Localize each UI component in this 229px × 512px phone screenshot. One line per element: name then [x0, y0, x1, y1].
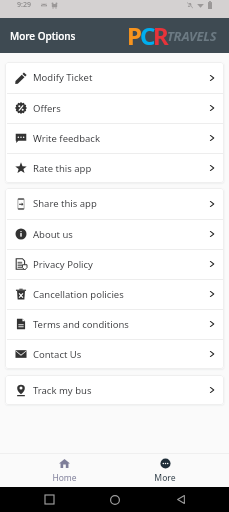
button[interactable]: Offers [5, 93, 224, 123]
button[interactable]: About us [5, 219, 224, 249]
button[interactable]: Rate this app [5, 153, 224, 183]
staticText: Terms and conditions [33, 318, 129, 331]
staticText: R [153, 19, 168, 52]
button[interactable]: Write feedback [5, 123, 224, 153]
button[interactable]: Home [82, 487, 148, 512]
staticText: TRAVELS [167, 27, 217, 45]
button[interactable]: Share this app [5, 188, 224, 219]
button[interactable]: Home [33, 454, 95, 487]
staticText: Contact Us [33, 348, 82, 361]
staticText: More [154, 472, 176, 484]
staticText: Modify Ticket [33, 71, 93, 84]
staticText: More Options [10, 29, 76, 43]
staticText: Privacy Policy [33, 258, 93, 271]
button[interactable]: Back [148, 487, 214, 512]
button[interactable]: Privacy Policy [5, 249, 224, 279]
staticText: Rate this app [33, 162, 92, 175]
button[interactable]: Track my bus [5, 375, 224, 405]
button[interactable]: Terms and conditions [5, 309, 224, 339]
staticText: Write feedback [33, 132, 101, 145]
button[interactable]: Cancellation policies [5, 279, 224, 309]
staticText: Home [52, 472, 77, 484]
staticText: C [140, 19, 155, 52]
button[interactable]: Contact Us [5, 339, 224, 369]
button[interactable]: Recent apps [16, 487, 82, 512]
staticText: Share this app [33, 197, 97, 210]
staticText: P [127, 19, 141, 52]
staticText: Track my bus [33, 384, 92, 397]
button[interactable]: Modify Ticket [5, 62, 224, 93]
button[interactable]: More [134, 454, 196, 487]
staticText: Cancellation policies [33, 288, 124, 301]
staticText: 9:29 [17, 0, 31, 10]
staticText: Offers [33, 102, 61, 115]
staticText: About us [33, 228, 73, 241]
